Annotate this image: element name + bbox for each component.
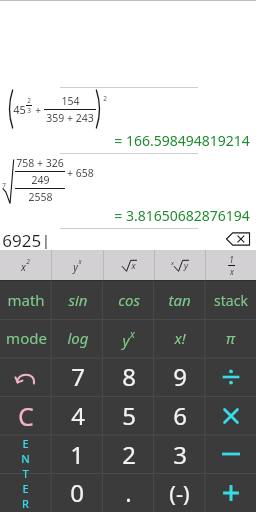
- button[interactable]: C: [0, 396, 52, 435]
- staticText: E: [22, 436, 29, 451]
- staticText: 4: [71, 399, 85, 432]
- staticText: N: [21, 451, 30, 466]
- button[interactable]: 2: [103, 435, 154, 473]
- button[interactable]: 5: [103, 396, 154, 435]
- staticText: 2: [103, 94, 107, 103]
- staticText: tan: [168, 290, 191, 310]
- staticText: 7: [2, 181, 6, 190]
- staticText: C: [18, 399, 34, 433]
- staticText: 0: [70, 476, 84, 509]
- staticText: E: [22, 481, 29, 496]
- staticText: (-): [169, 478, 190, 508]
- staticText: x: [78, 257, 82, 266]
- button[interactable]: x: [155, 250, 205, 280]
- staticText: 2: [27, 96, 31, 105]
- button[interactable]: Undo: [0, 357, 52, 396]
- button[interactable]: math: [0, 281, 52, 319]
- button[interactable]: Plus: [205, 473, 256, 512]
- staticText: = 166.598494819214: [114, 131, 250, 150]
- staticText: y: [122, 330, 130, 350]
- button[interactable]: cos: [103, 281, 154, 319]
- button[interactable]: 3: [154, 435, 205, 473]
- button[interactable]: x!: [154, 319, 205, 357]
- button[interactable]: stack: [205, 281, 256, 319]
- staticText: 6925|: [2, 229, 51, 249]
- staticText: .: [125, 476, 132, 509]
- staticText: x: [171, 259, 174, 267]
- staticText: x: [21, 260, 26, 274]
- staticText: 8: [122, 360, 136, 393]
- button[interactable]: Multiply: [205, 396, 256, 435]
- staticText: π: [226, 328, 235, 348]
- staticText: 3: [27, 106, 31, 115]
- button[interactable]: x: [0, 250, 51, 280]
- staticText: +: [35, 103, 41, 117]
- button[interactable]: (-): [154, 473, 205, 512]
- staticText: x!: [174, 328, 186, 348]
- staticText: x: [130, 327, 135, 341]
- staticText: stack: [214, 291, 248, 310]
- button[interactable]: Minus: [205, 435, 256, 473]
- button[interactable]: Divide: [205, 357, 256, 396]
- staticText: 3: [173, 438, 187, 471]
- button[interactable]: y: [52, 250, 103, 280]
- staticText: mode: [6, 328, 47, 348]
- button[interactable]: 8: [103, 357, 154, 396]
- staticText: x: [131, 260, 136, 272]
- button[interactable]: Backspace: [226, 232, 250, 246]
- button[interactable]: x: [104, 250, 154, 280]
- staticText: 45: [13, 102, 26, 117]
- button[interactable]: sin: [52, 281, 103, 319]
- staticText: 5: [122, 399, 136, 432]
- button[interactable]: log: [52, 319, 103, 357]
- button[interactable]: 6925|: [0, 229, 256, 249]
- staticText: T: [22, 466, 29, 481]
- staticText: 758 + 326: [16, 156, 64, 170]
- staticText: 1: [70, 438, 84, 471]
- staticText: 9: [173, 360, 187, 393]
- staticText: 2: [26, 257, 30, 266]
- button[interactable]: mode: [0, 319, 52, 357]
- staticText: 1: [229, 254, 234, 265]
- staticText: y: [184, 260, 188, 272]
- button[interactable]: 4: [52, 396, 103, 435]
- button[interactable]: 6: [154, 396, 205, 435]
- staticText: x: [230, 266, 234, 277]
- staticText: R: [22, 496, 29, 511]
- staticText: 7: [71, 360, 85, 393]
- staticText: 6: [173, 399, 187, 432]
- button[interactable]: Enter: [0, 435, 51, 512]
- staticText: = 3.81650682876194: [114, 206, 250, 225]
- button[interactable]: π: [205, 319, 256, 357]
- staticText: y: [73, 260, 78, 274]
- button[interactable]: 0: [51, 473, 103, 512]
- button[interactable]: 9: [154, 357, 205, 396]
- button[interactable]: .: [103, 473, 154, 512]
- staticText: + 658: [67, 166, 94, 180]
- button[interactable]: 1: [51, 435, 103, 473]
- staticText: 2558: [28, 190, 53, 204]
- staticText: 249: [31, 173, 50, 187]
- staticText: 2: [122, 438, 136, 471]
- button[interactable]: y: [103, 319, 154, 357]
- button[interactable]: 7: [52, 357, 103, 396]
- staticText: 359 + 243: [46, 111, 94, 125]
- staticText: cos: [118, 290, 140, 310]
- staticText: log: [67, 328, 89, 348]
- staticText: 154: [61, 94, 80, 108]
- staticText: sin: [68, 290, 88, 310]
- staticText: math: [7, 290, 45, 310]
- button[interactable]: tan: [154, 281, 205, 319]
- button[interactable]: 1: [206, 250, 256, 280]
